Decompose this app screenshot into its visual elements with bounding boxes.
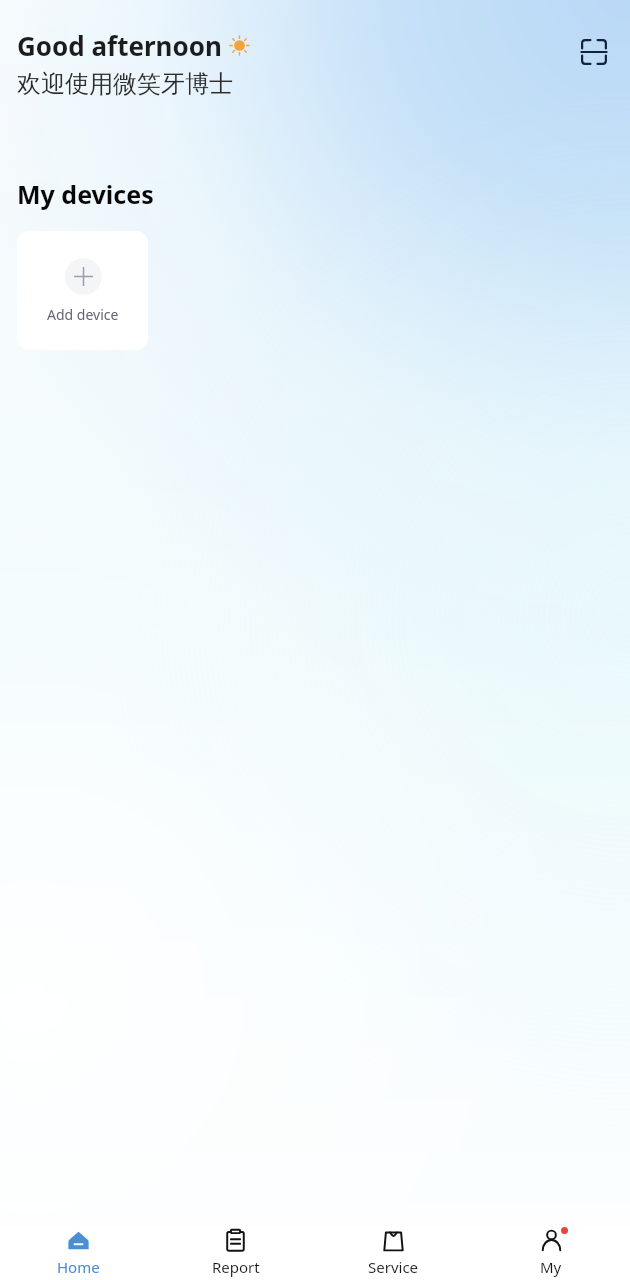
staticText: Good afternoon (17, 28, 222, 63)
staticText: 欢迎使用微笑牙博士 (17, 69, 233, 99)
button[interactable]: Add device (17, 231, 148, 350)
button[interactable]: Scan code (572, 30, 616, 74)
staticText: Service (368, 1257, 419, 1277)
button[interactable]: Report (157, 1226, 314, 1280)
button[interactable]: Service (314, 1226, 472, 1280)
staticText: Add device (47, 305, 119, 324)
staticText: My (540, 1257, 562, 1277)
button[interactable]: My (472, 1226, 630, 1280)
staticText: Report (212, 1257, 260, 1277)
button[interactable]: Home (0, 1226, 157, 1280)
staticText: Home (57, 1257, 100, 1277)
staticText: My devices (17, 177, 154, 211)
